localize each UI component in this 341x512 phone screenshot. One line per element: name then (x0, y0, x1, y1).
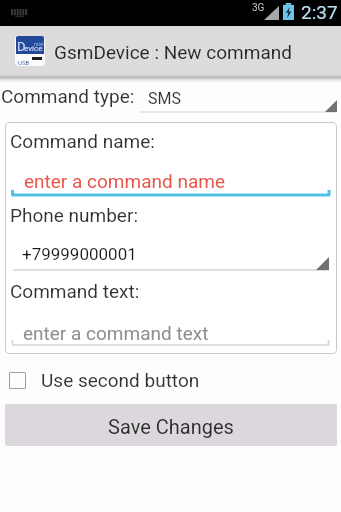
staticText: Use second button (41, 369, 200, 391)
staticText: mini (34, 41, 44, 47)
staticText: Phone number: (10, 204, 138, 226)
staticText: Command type: (1, 85, 135, 107)
staticText: Command text: (10, 280, 140, 302)
button[interactable]: Use second button (0, 364, 341, 396)
staticText: D (17, 39, 26, 54)
staticText: GsmDevice : New command (54, 41, 292, 63)
staticText: enter a command text (23, 322, 209, 344)
staticText: 3G (252, 2, 265, 14)
other: App icon (15, 36, 45, 66)
staticText: 2:37 (301, 1, 338, 23)
button[interactable]: enter a command text (11, 320, 331, 350)
staticText: +79999000001 (22, 244, 137, 264)
staticText: SMS (148, 89, 181, 108)
staticText: enter a command name (24, 170, 225, 192)
staticText: Save Changes (108, 415, 234, 438)
button[interactable]: +79999000001 (11, 244, 331, 274)
button[interactable]: SMS (139, 82, 337, 116)
button[interactable]: Save Changes (5, 404, 337, 446)
staticText: evice (24, 44, 43, 53)
staticText: Command name: (10, 130, 155, 152)
staticText: USB (18, 59, 30, 66)
button[interactable]: enter a command name (11, 168, 331, 198)
